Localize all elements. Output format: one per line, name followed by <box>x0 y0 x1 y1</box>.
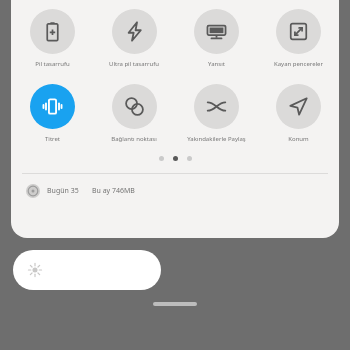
button[interactable]: Titret <box>11 84 93 143</box>
button[interactable]: Kullanıcı <box>11 174 339 207</box>
button[interactable]: Yansıt <box>175 9 257 68</box>
staticText: Ultra pil tasarrufu <box>109 60 159 68</box>
staticText: Pil tasarrufu <box>35 60 70 68</box>
button[interactable]: Parlaklık <box>13 250 161 290</box>
button[interactable]: Kayan pencereler <box>257 9 339 68</box>
staticText: Bu ay 746MB <box>92 186 135 196</box>
staticText: Yansıt <box>208 60 225 68</box>
staticText: Titret <box>45 135 60 143</box>
button[interactable]: Yakındakilerle Paylaş <box>175 84 257 143</box>
other: Kullanıcı <box>26 184 40 198</box>
staticText: Konum <box>288 135 309 143</box>
button[interactable]: Konum <box>257 84 339 143</box>
staticText: Kayan pencereler <box>274 60 323 68</box>
staticText: Yakındakilerle Paylaş <box>187 135 246 143</box>
staticText: Bağlantı noktası <box>111 135 157 143</box>
button[interactable]: Pil tasarrufu <box>11 9 93 68</box>
staticText: Bugün 35 <box>47 186 79 196</box>
button[interactable]: Bağlantı noktası <box>93 84 175 143</box>
button[interactable]: Ultra pil tasarrufu <box>93 9 175 68</box>
